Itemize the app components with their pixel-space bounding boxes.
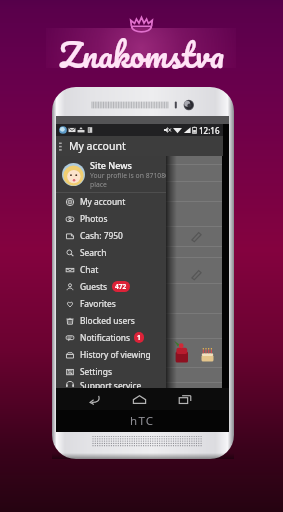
staticText: Chat bbox=[80, 264, 99, 275]
button[interactable]: Blocked users bbox=[56, 312, 166, 329]
button[interactable]: Back bbox=[72, 388, 117, 410]
button[interactable]: History of viewing bbox=[56, 346, 166, 363]
staticText: Your profile is on 871086 bbox=[90, 171, 166, 180]
button[interactable]: Favorites bbox=[56, 295, 166, 312]
button[interactable]: Support service bbox=[56, 380, 166, 388]
staticText: 1 bbox=[137, 333, 141, 342]
staticText: Blocked users bbox=[80, 315, 135, 326]
staticText: Guests bbox=[80, 281, 108, 292]
staticText: My account bbox=[69, 139, 126, 153]
staticText: Favorites bbox=[80, 298, 116, 309]
button[interactable]: Notifications bbox=[56, 329, 166, 346]
staticText: 12:16 bbox=[199, 125, 220, 136]
staticText: Site News bbox=[90, 159, 132, 171]
staticText: Znakomstva bbox=[59, 26, 225, 82]
staticText: History of viewing bbox=[80, 349, 151, 360]
button[interactable]: Settings bbox=[56, 363, 166, 380]
staticText: Search bbox=[80, 247, 107, 258]
staticText: My account bbox=[80, 196, 126, 207]
button[interactable]: Photos bbox=[56, 210, 166, 227]
button[interactable]: Search bbox=[56, 244, 166, 261]
button[interactable]: Site News bbox=[56, 156, 166, 192]
button[interactable]: Chat bbox=[56, 261, 166, 278]
button[interactable]: My account bbox=[56, 136, 223, 156]
staticText: Notifications bbox=[80, 332, 130, 343]
staticText: hTC bbox=[130, 413, 155, 429]
staticText: Settings bbox=[80, 366, 112, 377]
button[interactable]: My account bbox=[56, 193, 166, 210]
button[interactable]: Recents bbox=[162, 388, 207, 410]
staticText: 472 bbox=[115, 282, 127, 291]
staticText: Photos bbox=[80, 213, 108, 224]
button[interactable]: Guests bbox=[56, 278, 166, 295]
staticText: Cash: 7950 bbox=[80, 230, 123, 241]
button[interactable]: Home bbox=[117, 388, 162, 410]
staticText: place bbox=[90, 180, 107, 189]
button[interactable]: Cash: 7950 bbox=[56, 227, 166, 244]
staticText: Support service bbox=[80, 380, 142, 388]
